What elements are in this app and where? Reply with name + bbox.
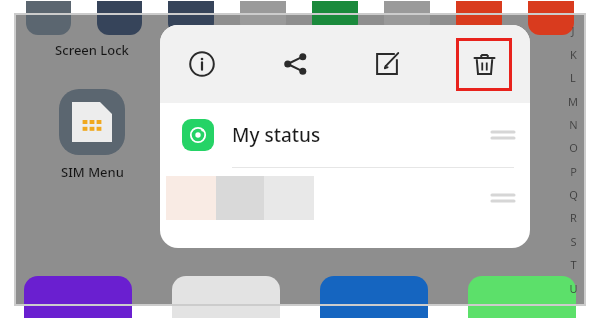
staticText: S <box>570 234 577 249</box>
button[interactable] <box>182 168 514 228</box>
staticText: SIM Menu <box>61 163 124 181</box>
button[interactable]: Edit <box>363 40 411 88</box>
button[interactable]: My status <box>182 103 514 167</box>
staticText: R <box>570 210 577 225</box>
staticText: M <box>568 94 578 109</box>
staticText: Screen Lock <box>55 41 129 59</box>
staticText: K <box>570 47 577 62</box>
staticText: O <box>569 140 578 155</box>
button[interactable]: Alphabet index <box>562 15 584 304</box>
staticText: N <box>569 117 578 132</box>
button[interactable]: Share <box>271 40 319 88</box>
staticText: P <box>570 164 577 179</box>
staticText: T <box>570 257 577 272</box>
button[interactable]: Delete <box>456 38 512 91</box>
staticText: L <box>570 70 576 85</box>
staticText: My status <box>232 122 321 148</box>
button[interactable]: Info <box>178 40 226 88</box>
button[interactable]: SIM Menu <box>59 89 125 155</box>
staticText: J <box>571 23 575 38</box>
staticText: Q <box>569 187 578 202</box>
staticText: U <box>569 281 578 296</box>
